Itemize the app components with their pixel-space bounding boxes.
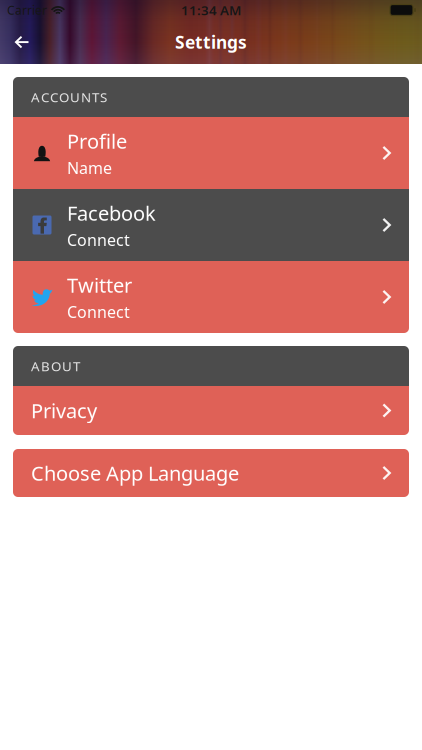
button[interactable]: Choose App Language — [13, 449, 409, 497]
button[interactable]: Privacy — [13, 386, 409, 435]
staticText: Twitter — [67, 272, 132, 298]
staticText: Connect — [67, 301, 130, 322]
staticText: Choose App Language — [31, 460, 239, 486]
button[interactable]: Facebook — [13, 189, 409, 261]
staticText: Connect — [67, 229, 130, 250]
staticText: Profile — [67, 128, 127, 154]
staticText: A C C O U N T S — [31, 88, 107, 106]
staticText: Privacy — [31, 397, 97, 424]
staticText: Carrier — [7, 2, 47, 18]
button[interactable]: Profile — [13, 117, 409, 189]
staticText: Settings — [175, 30, 247, 53]
staticText: 11:34 AM — [181, 1, 241, 19]
button[interactable]: Back — [0, 21, 44, 63]
staticText: Name — [67, 157, 112, 178]
staticText: Facebook — [67, 200, 156, 226]
button[interactable]: Twitter — [13, 261, 409, 333]
staticText: A B O U T — [31, 357, 80, 375]
